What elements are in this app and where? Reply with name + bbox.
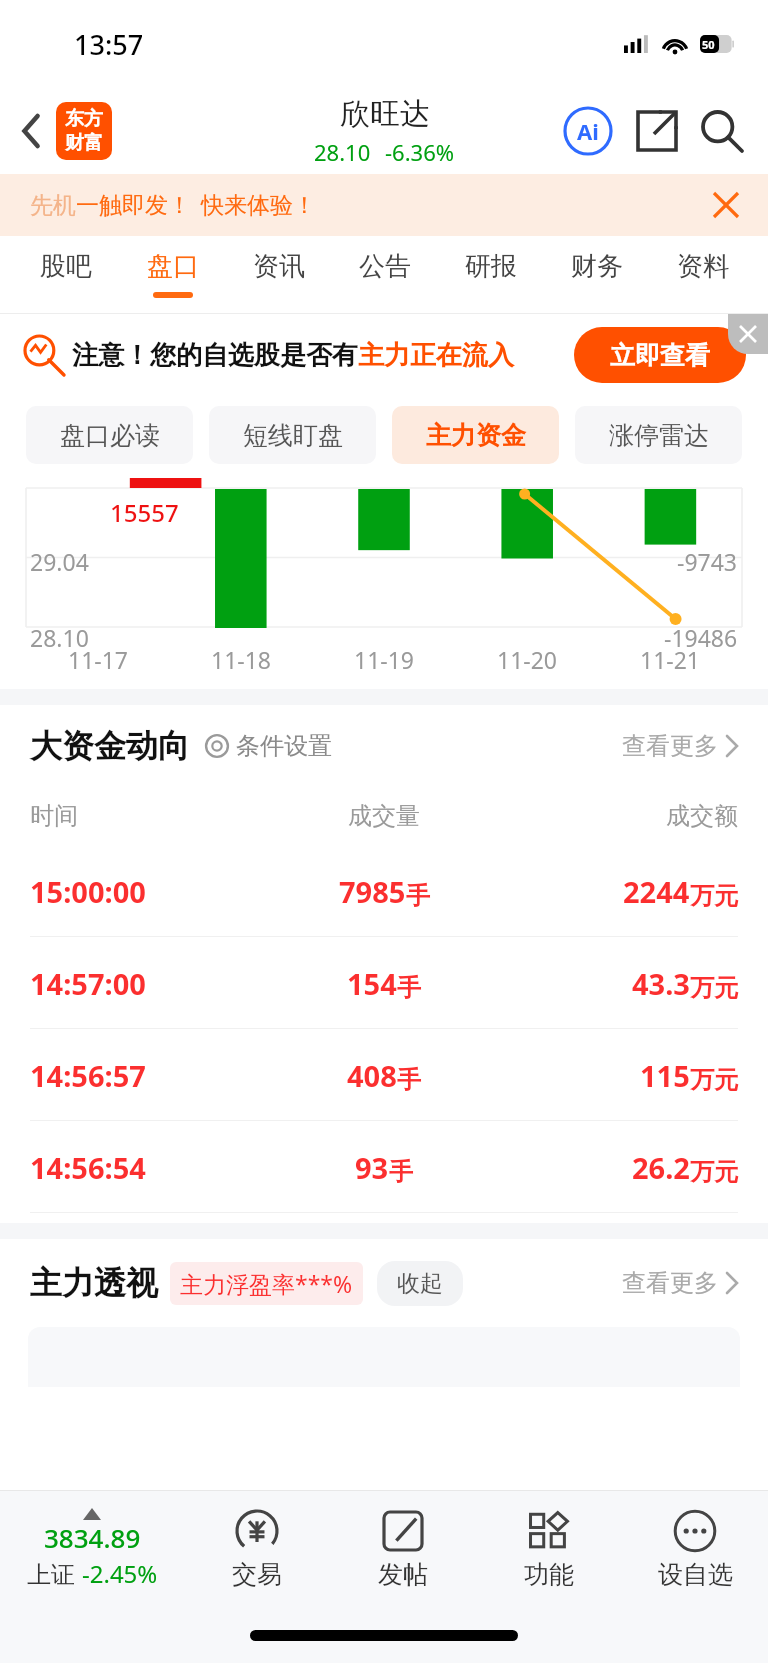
staticText: -9743 bbox=[677, 546, 738, 577]
button[interactable]: 短线盯盘 bbox=[209, 406, 376, 464]
staticText: 发帖 bbox=[378, 1559, 428, 1590]
staticText: 立即查看 bbox=[610, 340, 710, 371]
staticText: 盘口必读 bbox=[60, 420, 160, 451]
staticText: 11-18 bbox=[211, 644, 272, 675]
staticText: 一触即发！ bbox=[76, 191, 191, 220]
staticText: Ai bbox=[577, 116, 599, 146]
button[interactable]: 14:56:57 bbox=[0, 1029, 768, 1121]
staticText: 资料 bbox=[677, 250, 729, 283]
button[interactable]: East Money bbox=[56, 102, 112, 160]
staticText: 15:00:00 bbox=[30, 872, 266, 911]
staticText: 欣旺达 bbox=[340, 95, 430, 133]
staticText: 14:56:54 bbox=[30, 1148, 266, 1187]
staticText: 查看更多 bbox=[622, 731, 718, 761]
button[interactable]: 主力浮盈率***% bbox=[180, 1268, 353, 1299]
button[interactable]: Close banner bbox=[702, 181, 750, 229]
staticText: 成交额 bbox=[502, 801, 738, 831]
staticText: 11-20 bbox=[497, 644, 558, 675]
staticText: 主力正在流入 bbox=[358, 339, 514, 372]
staticText: 短线盯盘 bbox=[243, 420, 343, 451]
button[interactable]: 设自选 bbox=[622, 1509, 768, 1590]
staticText: -6.36% bbox=[385, 137, 455, 167]
button[interactable]: Share bbox=[630, 104, 684, 158]
button[interactable]: 交易 bbox=[184, 1509, 330, 1590]
staticText: 14:56:57 bbox=[30, 1056, 266, 1095]
staticText: 93 bbox=[355, 1148, 389, 1187]
button[interactable]: 盘口必读 bbox=[26, 406, 193, 464]
button[interactable]: 15:00:00 bbox=[0, 845, 768, 937]
staticText: 50 bbox=[702, 37, 715, 52]
staticText: 11-19 bbox=[354, 644, 415, 675]
staticText: 公告 bbox=[359, 250, 411, 283]
staticText: 研报 bbox=[465, 250, 517, 283]
staticText: 快来体验！ bbox=[201, 191, 316, 220]
button[interactable]: 3834.89 bbox=[0, 1508, 184, 1590]
button[interactable]: 功能 bbox=[476, 1509, 622, 1590]
staticText: 手 bbox=[389, 1157, 413, 1187]
staticText: -19486 bbox=[664, 622, 738, 653]
button[interactable]: 条件设置 bbox=[204, 731, 332, 761]
staticText: 查看更多 bbox=[622, 1268, 718, 1298]
staticText: 43.3 bbox=[632, 964, 690, 1003]
staticText: 手 bbox=[406, 881, 430, 911]
staticText: 11-21 bbox=[640, 644, 701, 675]
staticText: 15557 bbox=[110, 496, 179, 529]
button[interactable]: 财务 bbox=[544, 236, 650, 314]
button[interactable]: 资料 bbox=[650, 236, 756, 314]
staticText: 先机 bbox=[30, 191, 76, 220]
button[interactable]: 发帖 bbox=[330, 1509, 476, 1590]
button[interactable]: 立即查看 bbox=[574, 327, 746, 383]
button[interactable]: Search bbox=[694, 103, 750, 159]
staticText: 手 bbox=[397, 973, 421, 1003]
staticText: 功能 bbox=[524, 1559, 574, 1590]
staticText: 154 bbox=[347, 964, 397, 1003]
staticText: 14:57:00 bbox=[30, 964, 266, 1003]
button[interactable]: 主力资金 bbox=[392, 406, 559, 464]
staticText: 主力资金 bbox=[426, 420, 526, 451]
button[interactable]: 14:56:54 bbox=[0, 1121, 768, 1213]
staticText: 财富 bbox=[65, 131, 103, 155]
staticText: 上证 bbox=[27, 1557, 82, 1590]
staticText: 时间 bbox=[30, 801, 266, 831]
staticText: 涨停雷达 bbox=[609, 420, 709, 451]
staticText: 设自选 bbox=[658, 1559, 733, 1590]
staticText: 万元 bbox=[690, 881, 738, 911]
staticText: 万元 bbox=[690, 1157, 738, 1187]
staticText: -2.45% bbox=[82, 1557, 158, 1590]
staticText: 条件设置 bbox=[236, 731, 332, 761]
button[interactable]: Close ad bbox=[728, 314, 768, 354]
staticText: 盘口 bbox=[147, 250, 199, 283]
staticText: 7985 bbox=[339, 872, 406, 911]
staticText: 29.04 bbox=[30, 546, 89, 577]
staticText: 3834.89 bbox=[44, 1520, 141, 1555]
button[interactable]: 收起 bbox=[397, 1269, 443, 1298]
staticText: 主力浮盈率***% bbox=[180, 1268, 353, 1299]
button[interactable]: 公告 bbox=[332, 236, 438, 314]
staticText: 股吧 bbox=[40, 250, 92, 283]
button[interactable]: 14:57:00 bbox=[0, 937, 768, 1029]
button[interactable]: 盘口 bbox=[119, 236, 226, 314]
button[interactable]: 股吧 bbox=[12, 236, 119, 314]
staticText: 手 bbox=[397, 1065, 421, 1095]
staticText: 交易 bbox=[232, 1559, 282, 1590]
button[interactable]: Back bbox=[8, 107, 56, 155]
button[interactable]: 主力透视 bbox=[30, 1239, 738, 1327]
staticText: 2244 bbox=[623, 872, 690, 911]
staticText: 13:57 bbox=[74, 26, 144, 63]
staticText: 成交量 bbox=[266, 801, 502, 831]
button[interactable]: 资讯 bbox=[226, 236, 332, 314]
staticText: 万元 bbox=[690, 1065, 738, 1095]
button[interactable]: 涨停雷达 bbox=[575, 406, 742, 464]
staticText: 资讯 bbox=[253, 250, 305, 283]
staticText: 11-17 bbox=[68, 644, 129, 675]
button[interactable]: 研报 bbox=[438, 236, 544, 314]
button[interactable]: AI bbox=[560, 103, 616, 159]
staticText: 万元 bbox=[690, 973, 738, 1003]
staticText: 115 bbox=[640, 1056, 690, 1095]
staticText: 大资金动向 bbox=[30, 726, 190, 766]
button[interactable]: 大资金动向 bbox=[30, 705, 738, 787]
staticText: 收起 bbox=[397, 1269, 443, 1298]
staticText: 28.10 bbox=[30, 622, 89, 653]
staticText: 28.10 bbox=[314, 137, 371, 167]
staticText: 东方 bbox=[65, 107, 103, 131]
